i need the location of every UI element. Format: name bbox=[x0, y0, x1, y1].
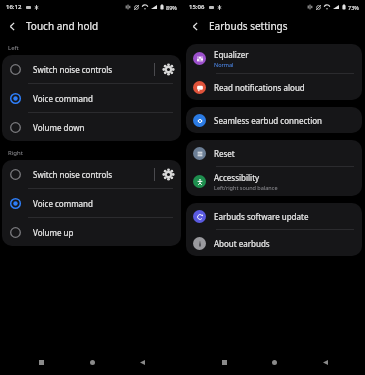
staticText: 16:12 bbox=[6, 3, 22, 11]
button[interactable]: Earbuds software update bbox=[186, 203, 362, 229]
staticText: Reset bbox=[214, 148, 235, 159]
button[interactable]: Back bbox=[132, 352, 152, 372]
button[interactable]: Back bbox=[183, 14, 207, 38]
button[interactable]: Equalizer bbox=[186, 44, 362, 73]
staticText: Earbuds settings bbox=[209, 19, 288, 33]
staticText: Voice command bbox=[33, 93, 173, 104]
button[interactable]: Read notifications aloud bbox=[186, 74, 362, 100]
staticText: Normal bbox=[214, 61, 234, 68]
staticText: 73% bbox=[348, 4, 359, 11]
staticText: Earbuds software update bbox=[214, 211, 309, 222]
button[interactable]: Seamless earbud connection bbox=[186, 107, 362, 133]
button[interactable]: Home bbox=[82, 352, 102, 372]
button[interactable]: Switch noise controls bbox=[2, 160, 181, 188]
button[interactable]: Recents bbox=[31, 352, 51, 372]
button[interactable]: Back bbox=[0, 14, 24, 38]
staticText: 89% bbox=[166, 4, 177, 11]
staticText: About earbuds bbox=[214, 238, 270, 249]
button[interactable]: Voice command bbox=[2, 189, 181, 217]
staticText: Volume down bbox=[33, 122, 173, 133]
staticText: Seamless earbud connection bbox=[214, 115, 323, 126]
staticText: Volume up bbox=[33, 227, 173, 238]
button[interactable]: Accessibility bbox=[186, 167, 362, 196]
button[interactable]: Recents bbox=[214, 352, 234, 372]
button[interactable]: About earbuds bbox=[186, 230, 362, 256]
staticText: Accessibility bbox=[214, 172, 260, 183]
staticText: Touch and hold bbox=[26, 19, 99, 33]
button[interactable]: Noise control settings bbox=[155, 161, 181, 187]
staticText: Switch noise controls bbox=[33, 64, 154, 75]
button[interactable]: Noise control settings bbox=[155, 56, 181, 82]
button[interactable]: Switch noise controls bbox=[2, 55, 181, 83]
staticText: 15:06 bbox=[189, 3, 205, 11]
button[interactable]: Volume down bbox=[2, 113, 181, 141]
button[interactable]: Reset bbox=[186, 140, 362, 166]
staticText: Voice command bbox=[33, 198, 173, 209]
staticText: Switch noise controls bbox=[33, 169, 154, 180]
staticText: Equalizer bbox=[214, 49, 249, 60]
button[interactable]: Back bbox=[315, 352, 335, 372]
button[interactable]: Volume up bbox=[2, 218, 181, 246]
button[interactable]: Home bbox=[264, 352, 284, 372]
button[interactable]: Voice command bbox=[2, 84, 181, 112]
staticText: Left/right sound balance bbox=[214, 184, 278, 191]
staticText: Left bbox=[8, 44, 19, 52]
staticText: Read notifications aloud bbox=[214, 82, 305, 93]
staticText: Right bbox=[8, 149, 23, 157]
